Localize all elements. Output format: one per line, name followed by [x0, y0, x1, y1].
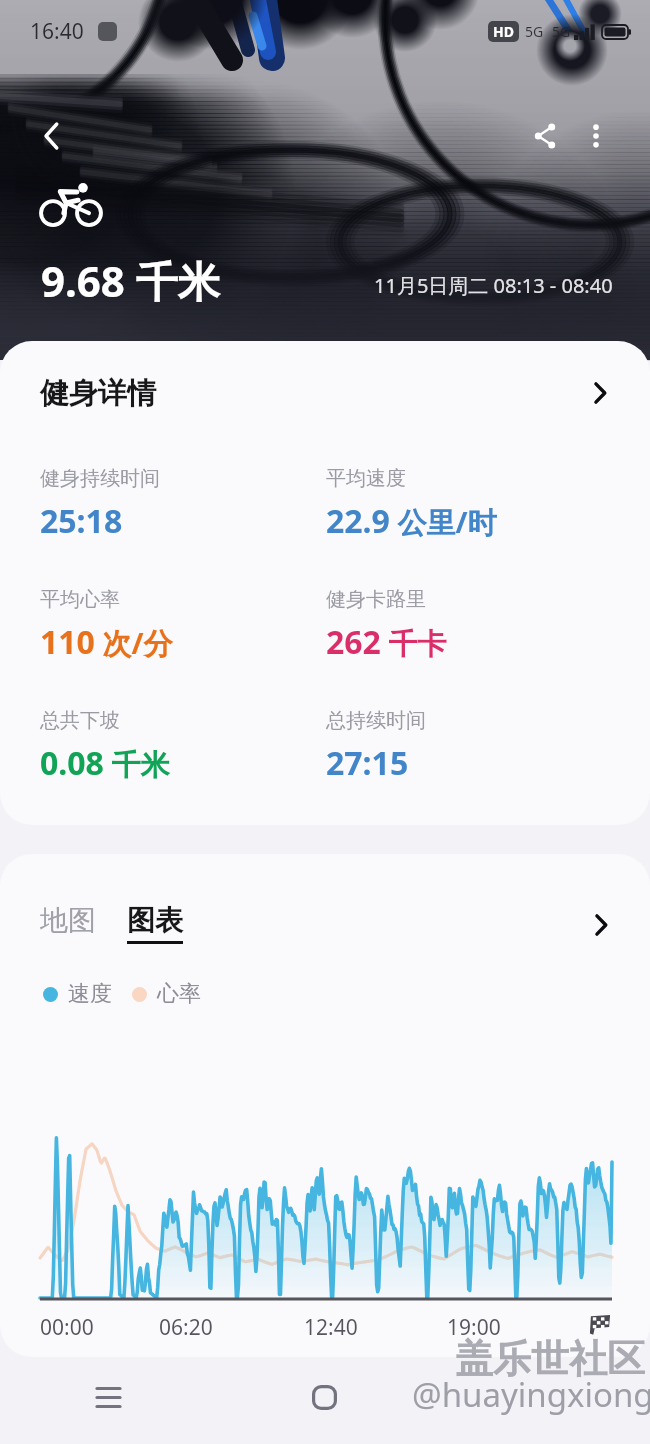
staticText: 06:20 [159, 1313, 213, 1342]
staticText: 22.9 公里/时 [326, 499, 497, 543]
staticText: 27:15 [326, 741, 409, 785]
staticText: 平均速度 [326, 466, 406, 491]
staticText: 健身详情 [40, 375, 156, 412]
staticText: 00:00 [40, 1313, 94, 1342]
staticText: 速度 [68, 980, 112, 1008]
staticText: 5G [525, 22, 544, 41]
staticText: @huayingxiong [412, 1372, 650, 1417]
button[interactable]: More options [572, 112, 620, 160]
staticText: 盖乐世社区 [455, 1335, 645, 1383]
staticText: 9.68 千米 [41, 252, 220, 309]
staticText: 健身卡路里 [326, 587, 426, 612]
staticText: 12:40 [304, 1313, 358, 1342]
button[interactable]: Open chart [580, 904, 622, 946]
staticText: 262 千卡 [326, 620, 447, 664]
button[interactable]: 地图 [40, 903, 96, 938]
staticText: 心率 [157, 980, 201, 1008]
staticText: 地图 [40, 903, 96, 938]
button[interactable]: 健身详情 [0, 341, 650, 445]
button[interactable]: Back [433, 1350, 650, 1444]
staticText: 11月5日周二 08:13 - 08:40 [374, 272, 613, 299]
staticText: 25:18 [40, 499, 123, 543]
button[interactable]: 图表 [127, 903, 183, 944]
staticText: HD [493, 22, 514, 41]
staticText: 5G [552, 22, 571, 41]
staticText: 19:00 [447, 1313, 501, 1342]
staticText: 总持续时间 [326, 708, 426, 733]
staticText: 平均心率 [40, 587, 120, 612]
button[interactable]: Back [28, 112, 76, 160]
staticText: 图表 [127, 903, 183, 938]
staticText: 16:40 [30, 17, 84, 46]
button[interactable]: Share [521, 112, 569, 160]
button[interactable]: Recents [0, 1350, 216, 1444]
staticText: 110 次/分 [40, 620, 173, 664]
staticText: 0.08 千米 [40, 741, 170, 785]
staticText: 健身持续时间 [40, 466, 160, 491]
button[interactable]: Home [216, 1350, 433, 1444]
staticText: 总共下坡 [40, 708, 120, 733]
